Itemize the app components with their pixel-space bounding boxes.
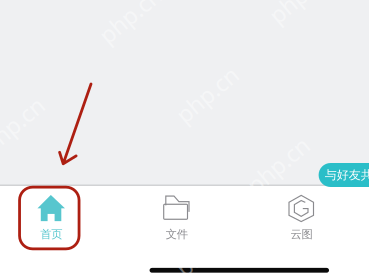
button[interactable]: 云图 — [262, 190, 340, 247]
staticText: 文件 — [166, 227, 188, 241]
staticText: 与好友共享 — [325, 167, 369, 182]
staticText: 首页 — [40, 227, 62, 241]
button[interactable]: 首页 — [12, 190, 90, 247]
staticText: php.cn — [170, 232, 243, 264]
staticText: 云图 — [290, 227, 312, 241]
button[interactable]: 文件 — [138, 190, 216, 247]
